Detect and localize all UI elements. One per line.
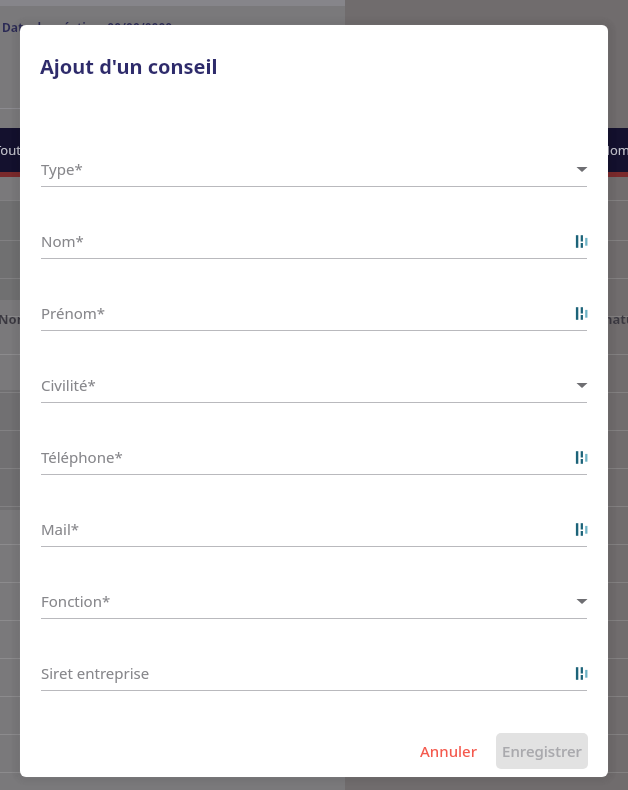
other: Ouvrir la liste Type: [572, 159, 592, 179]
other: Ouvrir la liste Civilité: [572, 375, 592, 395]
staticText: Type*: [41, 159, 83, 179]
staticText: Ajout d'un conseil: [40, 53, 218, 80]
staticText: Civilité*: [41, 375, 96, 395]
other: Ouvrir la liste Fonction: [572, 591, 592, 611]
other: Saisie assistée Nom: [572, 231, 592, 251]
staticText: Mail*: [41, 519, 80, 539]
staticText: Date de création 00/00/0000: [2, 19, 173, 35]
staticText: nature: [604, 310, 628, 328]
button[interactable]: Nom*: [41, 222, 592, 260]
staticText: Nom: [0, 310, 30, 328]
button[interactable]: Civilité*: [41, 366, 592, 404]
staticText: Annuler: [420, 741, 478, 761]
button[interactable]: Mail*: [41, 510, 592, 548]
button[interactable]: Enregistrer: [496, 733, 588, 769]
button[interactable]: Prénom*: [41, 294, 592, 332]
button[interactable]: Fonction*: [41, 582, 592, 620]
staticText: Enregistrer: [502, 741, 582, 761]
staticText: Toutes: [0, 141, 35, 159]
staticText: Siret entreprise: [41, 663, 150, 683]
staticText: Fonction*: [41, 591, 111, 611]
staticText: Nom: [600, 141, 628, 159]
button[interactable]: Type*: [41, 150, 592, 188]
other: Saisie assistée Mail: [572, 519, 592, 539]
staticText: Prénom*: [41, 303, 106, 323]
button[interactable]: Annuler: [412, 735, 486, 767]
staticText: Nom*: [41, 231, 84, 251]
button[interactable]: Téléphone*: [41, 438, 592, 476]
other: Saisie assistée Siret entreprise: [572, 663, 592, 683]
staticText: Téléphone*: [41, 447, 123, 467]
other: Saisie assistée Téléphone: [572, 447, 592, 467]
button[interactable]: Siret entreprise: [41, 654, 592, 692]
other: Saisie assistée Prénom: [572, 303, 592, 323]
